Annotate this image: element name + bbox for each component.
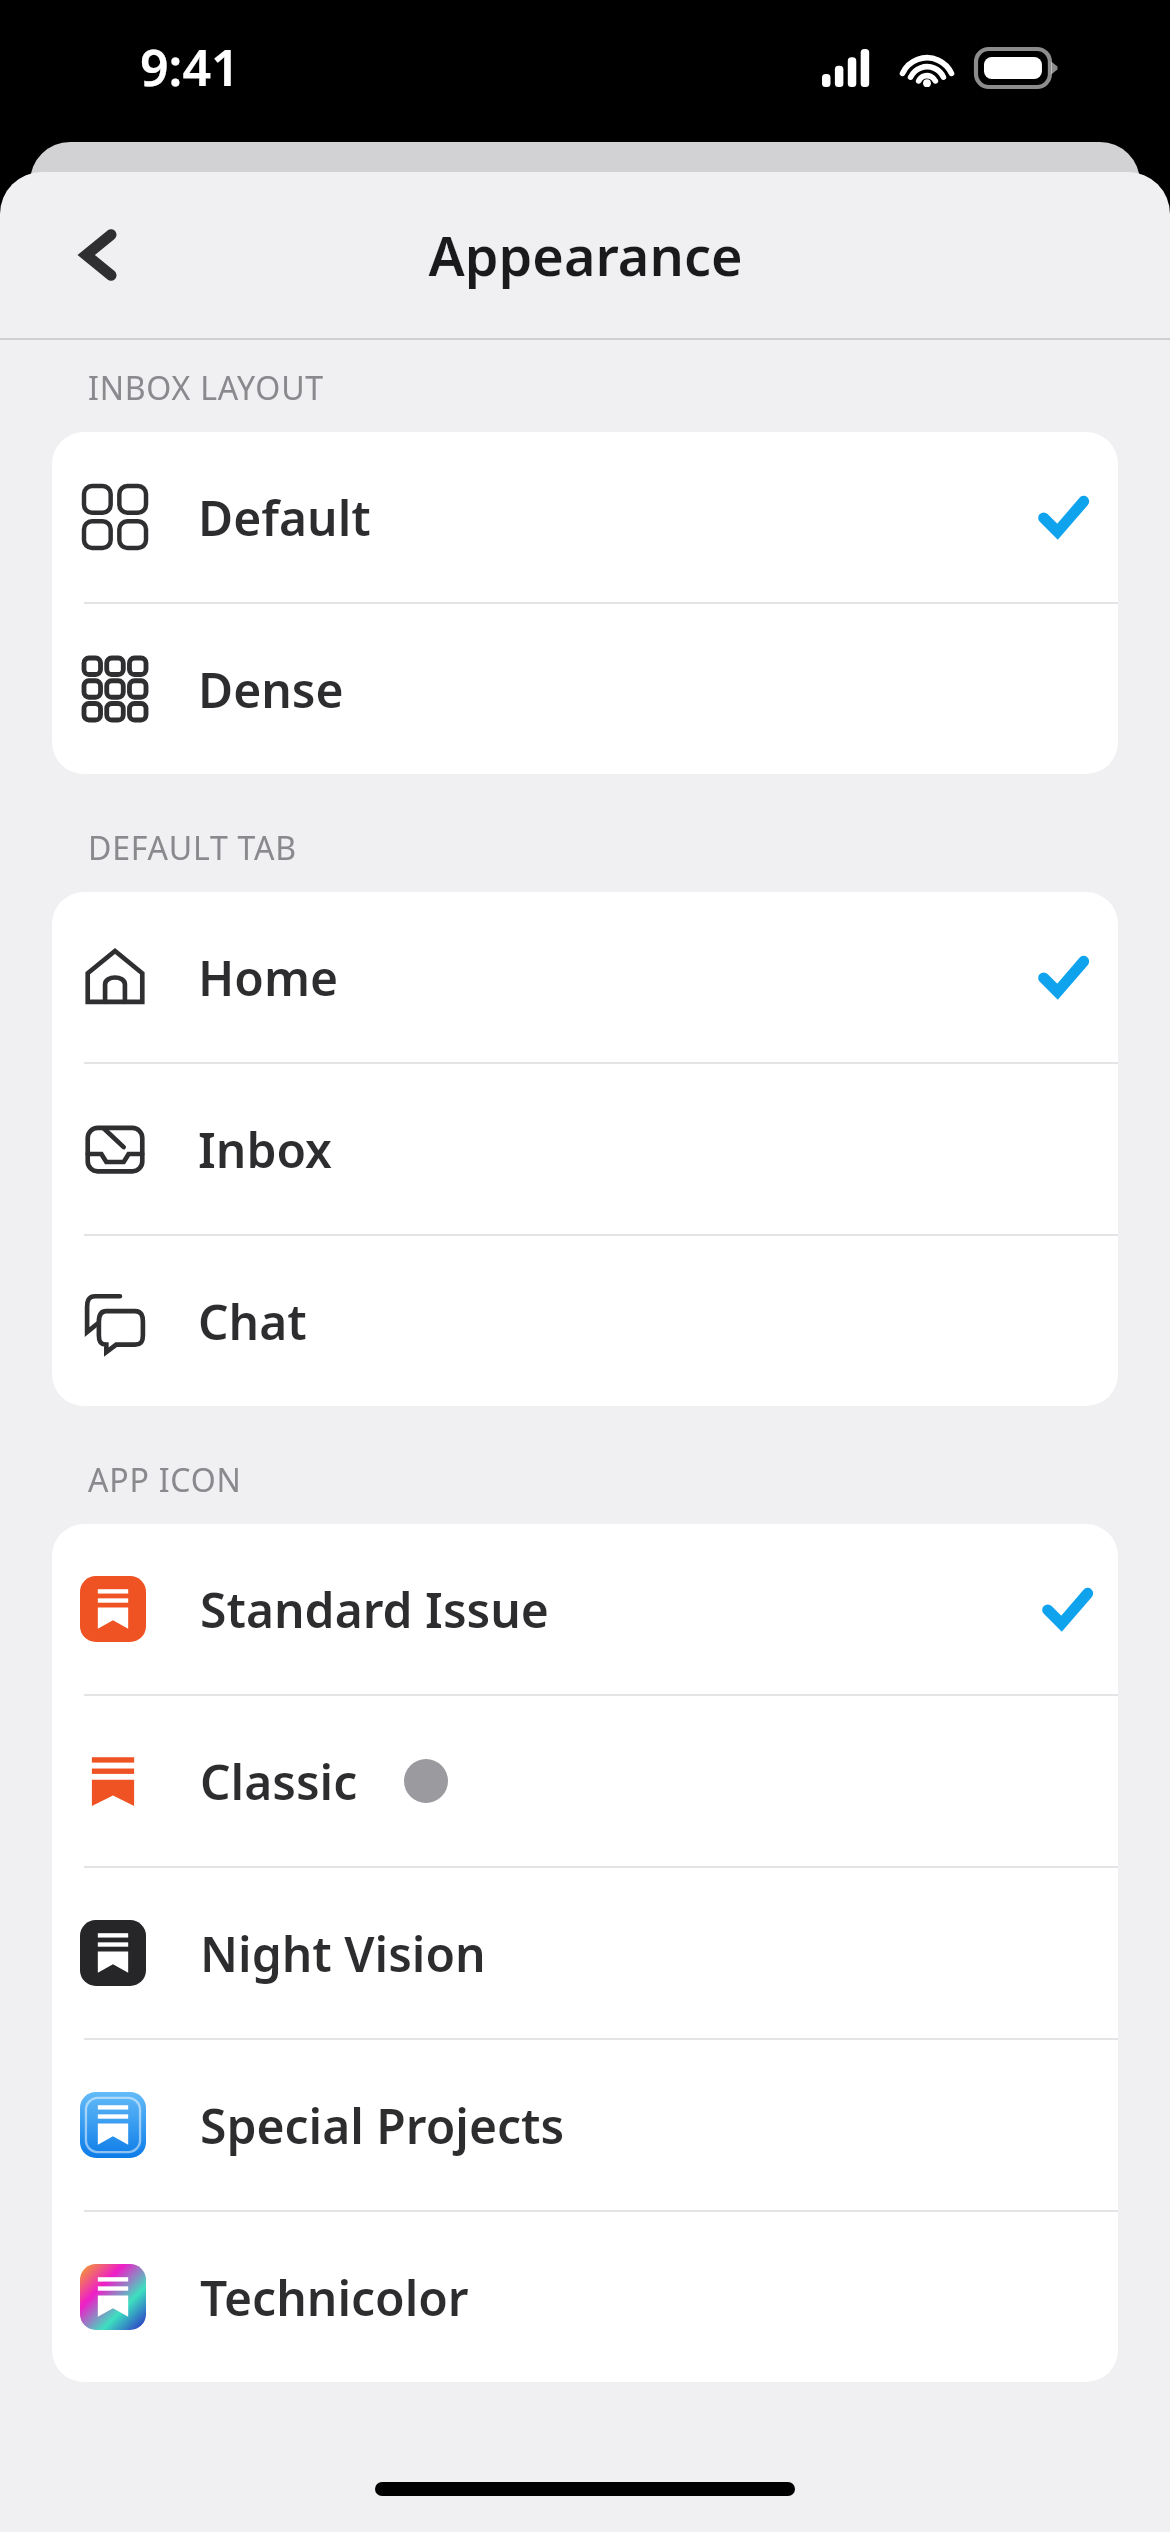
- button[interactable]: Classic: [52, 1696, 1118, 1866]
- button[interactable]: Inbox: [52, 1064, 1118, 1234]
- staticText: APP ICON: [88, 1458, 242, 1502]
- button[interactable]: Chat: [52, 1236, 1118, 1406]
- staticText: Default: [198, 485, 371, 550]
- staticText: Appearance: [428, 218, 743, 292]
- button[interactable]: Technicolor: [52, 2212, 1118, 2382]
- button[interactable]: Home: [52, 892, 1118, 1062]
- button[interactable]: Night Vision: [52, 1868, 1118, 2038]
- staticText: Dense: [198, 657, 344, 722]
- staticText: Chat: [198, 1289, 307, 1354]
- button[interactable]: Standard Issue: [52, 1524, 1118, 1694]
- staticText: Home: [198, 945, 339, 1010]
- staticText: Technicolor: [200, 2265, 469, 2330]
- staticText: DEFAULT TAB: [88, 826, 297, 870]
- staticText: Night Vision: [200, 1921, 486, 1986]
- staticText: Inbox: [198, 1117, 332, 1182]
- staticText: 9:41: [140, 33, 240, 101]
- staticText: Special Projects: [200, 2093, 565, 2158]
- button[interactable]: Default: [52, 432, 1118, 602]
- staticText: INBOX LAYOUT: [88, 366, 324, 410]
- button[interactable]: Dense: [52, 604, 1118, 774]
- staticText: Standard Issue: [200, 1577, 549, 1642]
- staticText: Classic: [200, 1749, 358, 1814]
- button[interactable]: Back: [52, 207, 148, 303]
- button[interactable]: Special Projects: [52, 2040, 1118, 2210]
